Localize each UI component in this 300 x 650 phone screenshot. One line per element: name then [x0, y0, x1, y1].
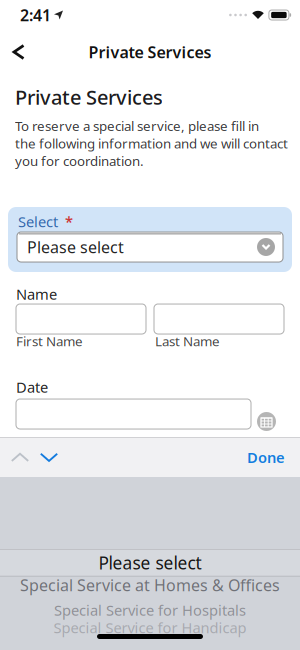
staticText: Special Service for Hospitals: [54, 600, 246, 620]
button[interactable]: Please select: [17, 232, 283, 262]
staticText: Done: [247, 448, 285, 467]
button[interactable]: Done: [247, 436, 300, 479]
staticText: Select: [18, 212, 58, 231]
button[interactable]: Special Service for Hospitals: [54, 594, 246, 619]
button[interactable]: Date: [16, 399, 251, 429]
staticText: 2:41: [20, 4, 51, 26]
staticText: Special Service at Homes & Offices: [20, 574, 280, 596]
staticText: Please select: [27, 236, 124, 258]
button[interactable]: First Name: [16, 304, 146, 334]
button[interactable]: Previous field: [0, 439, 29, 475]
button[interactable]: Special Service at Homes & Offices: [20, 577, 280, 594]
staticText: you for coordination.: [15, 152, 144, 170]
staticText: First Name: [16, 332, 83, 350]
button[interactable]: Last Name: [154, 304, 284, 334]
staticText: Private Services: [88, 41, 211, 63]
button[interactable]: Special Service for Handicap: [53, 619, 246, 636]
staticText: Name: [16, 284, 57, 304]
staticText: *: [65, 212, 73, 231]
staticText: Private Services: [15, 84, 163, 110]
staticText: Special Service for Handicap: [53, 618, 246, 637]
staticText: Please select: [98, 551, 201, 574]
staticText: To reserve a special service, please fil…: [15, 117, 259, 135]
staticText: the following information and we will co…: [15, 134, 288, 152]
staticText: Last Name: [155, 332, 220, 350]
button[interactable]: Pick date: [257, 397, 276, 431]
staticText: Date: [16, 377, 48, 397]
button[interactable]: Next field: [29, 439, 58, 475]
button[interactable]: Back: [0, 32, 25, 72]
